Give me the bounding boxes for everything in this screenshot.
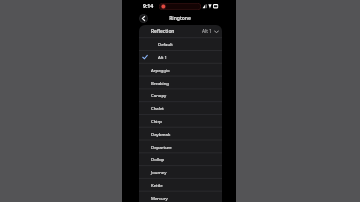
staticText: Default — [158, 41, 173, 47]
button[interactable]: Back — [139, 14, 148, 23]
button[interactable]: Chirp — [139, 114, 222, 127]
button[interactable]: Canopy — [139, 88, 222, 101]
staticText: 9:14 — [143, 3, 154, 10]
staticText: Reflection — [151, 28, 175, 35]
button[interactable]: Arpeggio — [139, 63, 222, 76]
staticText: Arpeggio — [151, 67, 170, 73]
button[interactable]: Kettle — [139, 178, 222, 191]
staticText: Alt 1 — [202, 28, 212, 34]
staticText: Canopy — [151, 92, 167, 98]
button[interactable]: Daybreak — [139, 127, 222, 140]
button[interactable]: Reflection — [139, 25, 222, 37]
staticText: Chirp — [151, 118, 162, 124]
staticText: Departure — [151, 144, 172, 150]
button[interactable]: Dollop — [139, 152, 222, 165]
staticText: Journey — [151, 169, 167, 175]
staticText: Daybreak — [151, 131, 171, 137]
button[interactable]: Screen recording — [159, 3, 201, 10]
staticText: Dollop — [151, 156, 165, 162]
button[interactable]: Default — [139, 37, 222, 50]
button[interactable]: Alt 1 — [139, 50, 222, 63]
button[interactable]: Breaking — [139, 76, 222, 89]
staticText: Chalet — [151, 105, 164, 111]
other: Signal, Wi-Fi and battery status — [202, 3, 219, 9]
button[interactable]: Journey — [139, 165, 222, 178]
button[interactable]: Chalet — [139, 101, 222, 114]
staticText: Alt 1 — [158, 54, 167, 60]
staticText: Kettle — [151, 182, 163, 188]
button[interactable]: Mercury — [139, 191, 222, 202]
staticText: Mercury — [151, 195, 168, 201]
button[interactable]: Departure — [139, 140, 222, 153]
staticText: Ringtone — [123, 15, 237, 22]
staticText: Breaking — [151, 80, 170, 86]
